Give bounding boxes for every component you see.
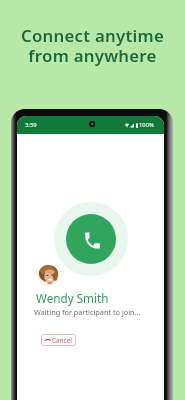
- staticText: from anywhere: [28, 44, 157, 67]
- staticText: 3:39: [25, 121, 37, 129]
- staticText: Connect anytime: [21, 24, 164, 47]
- staticText: 100%: [139, 121, 154, 129]
- staticText: Waiting for participant to join...: [34, 307, 141, 317]
- button[interactable]: Cancel: [41, 334, 76, 346]
- staticText: Wendy Smith: [36, 290, 109, 306]
- button[interactable]: Call: [54, 202, 128, 276]
- staticText: Cancel: [52, 336, 72, 345]
